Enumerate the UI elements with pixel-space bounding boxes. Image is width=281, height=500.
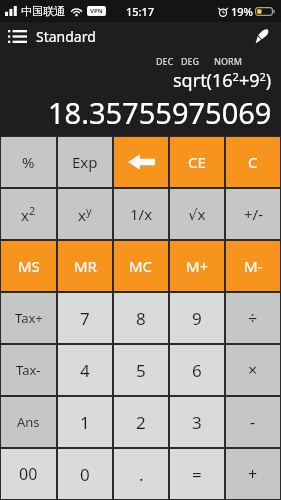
staticText: 7 bbox=[80, 307, 90, 330]
staticText: DEC bbox=[156, 55, 174, 67]
staticText: M+ bbox=[186, 256, 209, 276]
staticText: NORM bbox=[214, 55, 242, 67]
button[interactable]: 5 bbox=[114, 345, 168, 395]
staticText: sqrt(162+92) bbox=[173, 68, 272, 93]
staticText: × bbox=[248, 359, 258, 381]
button[interactable]: - bbox=[226, 397, 280, 447]
staticText: CE bbox=[188, 152, 206, 172]
button[interactable]: MS bbox=[1, 241, 56, 291]
staticText: M- bbox=[244, 256, 263, 276]
button[interactable]: M- bbox=[226, 241, 280, 291]
button[interactable]: 1 bbox=[58, 397, 112, 447]
button[interactable]: C bbox=[226, 137, 280, 187]
button[interactable]: M+ bbox=[170, 241, 224, 291]
staticText: Ans bbox=[17, 413, 40, 431]
staticText: = bbox=[192, 463, 202, 486]
staticText: 0 bbox=[80, 463, 90, 486]
button[interactable]: √x bbox=[170, 189, 224, 239]
button[interactable]: Backspace bbox=[114, 137, 168, 187]
staticText: 1 bbox=[80, 411, 90, 434]
staticText: +/- bbox=[244, 204, 263, 224]
button[interactable]: Tax- bbox=[1, 345, 56, 395]
button[interactable]: Edit bbox=[250, 24, 274, 48]
staticText: 18.35755975069 bbox=[48, 93, 272, 132]
button[interactable]: 9 bbox=[170, 293, 224, 343]
button[interactable]: + bbox=[226, 449, 280, 499]
staticText: xy bbox=[78, 203, 92, 225]
button[interactable]: +/- bbox=[226, 189, 280, 239]
button[interactable]: x2 bbox=[1, 189, 56, 239]
staticText: DEG bbox=[181, 55, 200, 67]
button[interactable]: 0 bbox=[58, 449, 112, 499]
button[interactable]: MR bbox=[58, 241, 112, 291]
staticText: 9 bbox=[192, 307, 202, 330]
button[interactable]: Ans bbox=[1, 397, 56, 447]
staticText: √x bbox=[188, 204, 206, 224]
staticText: Tax- bbox=[16, 361, 41, 379]
button[interactable]: CE bbox=[170, 137, 224, 187]
staticText: . bbox=[139, 463, 144, 486]
staticText: 19% bbox=[231, 4, 253, 19]
button[interactable]: Exp bbox=[58, 137, 112, 187]
staticText: 6 bbox=[192, 359, 202, 382]
button[interactable]: . bbox=[114, 449, 168, 499]
staticText: MR bbox=[74, 256, 97, 276]
button[interactable]: Menu bbox=[4, 24, 100, 49]
button[interactable]: × bbox=[226, 345, 280, 395]
staticText: MS bbox=[18, 256, 40, 276]
other: Menu bbox=[8, 30, 27, 43]
staticText: 5 bbox=[136, 359, 146, 382]
button[interactable]: = bbox=[170, 449, 224, 499]
staticText: Exp bbox=[72, 152, 98, 172]
staticText: Tax+ bbox=[15, 309, 43, 327]
button[interactable]: xy bbox=[58, 189, 112, 239]
staticText: ÷ bbox=[248, 307, 258, 329]
staticText: MC bbox=[129, 256, 153, 276]
staticText: 1/x bbox=[130, 204, 153, 224]
staticText: x2 bbox=[21, 203, 36, 225]
staticText: Standard bbox=[36, 27, 96, 46]
button[interactable]: 4 bbox=[58, 345, 112, 395]
staticText: C bbox=[248, 152, 258, 172]
staticText: - bbox=[250, 411, 256, 433]
staticText: 15:17 bbox=[126, 4, 155, 19]
button[interactable]: 00 bbox=[1, 449, 56, 499]
staticText: 4 bbox=[80, 359, 90, 382]
button[interactable]: 8 bbox=[114, 293, 168, 343]
staticText: % bbox=[22, 152, 35, 172]
staticText: VPN bbox=[90, 7, 103, 15]
staticText: 00 bbox=[19, 463, 38, 485]
staticText: 8 bbox=[136, 307, 146, 330]
button[interactable]: ÷ bbox=[226, 293, 280, 343]
button[interactable]: 1/x bbox=[114, 189, 168, 239]
button[interactable]: Tax+ bbox=[1, 293, 56, 343]
button[interactable]: 6 bbox=[170, 345, 224, 395]
staticText: 中国联通 bbox=[21, 4, 65, 18]
button[interactable]: MC bbox=[114, 241, 168, 291]
staticText: 3 bbox=[192, 411, 202, 434]
staticText: 2 bbox=[136, 411, 146, 434]
button[interactable]: 7 bbox=[58, 293, 112, 343]
button[interactable]: % bbox=[1, 137, 56, 187]
button[interactable]: 3 bbox=[170, 397, 224, 447]
staticText: + bbox=[248, 463, 258, 485]
button[interactable]: 2 bbox=[114, 397, 168, 447]
